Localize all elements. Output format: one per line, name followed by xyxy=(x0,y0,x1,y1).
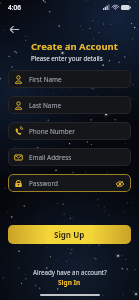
button[interactable]: Sign Up xyxy=(8,225,131,244)
staticText: First Name xyxy=(29,75,125,84)
button[interactable]: Password xyxy=(8,174,131,192)
button[interactable]: First Name xyxy=(8,70,131,88)
staticText: Last Name xyxy=(29,101,125,110)
button[interactable]: Phone Number xyxy=(8,122,131,140)
button[interactable]: Email Address xyxy=(8,148,131,166)
staticText: Create an Account xyxy=(31,40,118,53)
button[interactable]: Show password xyxy=(114,178,125,189)
staticText: Sign Up xyxy=(54,229,85,240)
staticText: 4:06 xyxy=(8,3,21,12)
button[interactable]: Last Name xyxy=(8,96,131,114)
button[interactable]: Back xyxy=(5,20,23,38)
staticText: Please enter your details xyxy=(31,54,103,62)
staticText: Email Address xyxy=(29,153,125,162)
staticText: Already have an account? xyxy=(33,268,107,276)
staticText: Sign In xyxy=(58,278,81,287)
staticText: Phone Number xyxy=(29,127,125,136)
button[interactable]: Sign In xyxy=(54,277,85,288)
staticText: Password xyxy=(29,179,114,188)
